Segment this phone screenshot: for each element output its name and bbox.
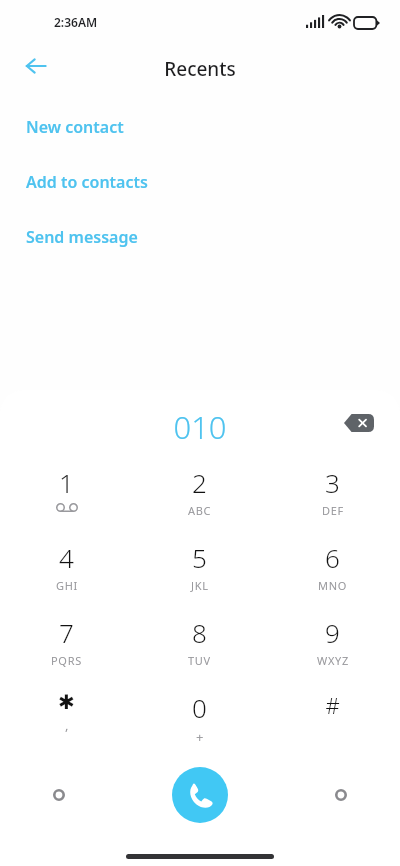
button[interactable]: 3 [266, 460, 399, 535]
button[interactable]: Back [16, 46, 56, 86]
staticText: ✱ [58, 690, 75, 713]
staticText: Add to contacts [26, 171, 148, 193]
staticText: 5 [192, 540, 207, 575]
staticText: ABC [188, 503, 212, 518]
staticText: New contact [26, 116, 124, 138]
button[interactable]: Delete [336, 404, 382, 442]
button[interactable]: # [266, 685, 399, 760]
button[interactable]: Call [172, 767, 228, 823]
staticText: 0 [192, 690, 207, 725]
staticText: 8 [192, 615, 207, 650]
button[interactable]: 0 [133, 685, 266, 760]
staticText: 3 [325, 465, 340, 500]
staticText: WXYZ [317, 653, 349, 668]
button[interactable]: 4 [0, 535, 133, 610]
staticText: JKL [191, 578, 209, 593]
staticText: # [325, 690, 340, 720]
button[interactable]: Keypad options [326, 780, 356, 810]
button[interactable]: Send message [0, 220, 400, 254]
staticText: 9 [325, 615, 340, 650]
staticText: TUV [188, 653, 211, 668]
staticText: 010 [0, 406, 400, 448]
button[interactable]: Add to contacts [0, 165, 400, 199]
button[interactable]: 9 [266, 610, 399, 685]
button[interactable]: 2 [133, 460, 266, 535]
staticText: + [196, 728, 204, 746]
staticText: 2:36AM [54, 14, 98, 30]
staticText: 7 [59, 615, 74, 650]
button[interactable]: Options [44, 780, 74, 810]
button[interactable]: New contact [0, 110, 400, 144]
staticText: 4 [59, 540, 74, 575]
staticText: MNO [318, 578, 348, 593]
button[interactable]: ✱ [0, 685, 133, 760]
staticText: DEF [322, 503, 344, 518]
button[interactable]: 5 [133, 535, 266, 610]
button[interactable]: 8 [133, 610, 266, 685]
staticText: 2 [192, 465, 207, 500]
staticText: PQRS [51, 653, 82, 668]
staticText: Send message [26, 226, 138, 248]
staticText: GHI [56, 578, 78, 593]
staticText: Recents [0, 56, 400, 82]
staticText: 6 [325, 540, 340, 575]
button[interactable]: 6 [266, 535, 399, 610]
staticText: 1 [59, 465, 74, 500]
button[interactable]: 1 [0, 460, 133, 535]
button[interactable]: 7 [0, 610, 133, 685]
staticText: , [65, 716, 69, 734]
